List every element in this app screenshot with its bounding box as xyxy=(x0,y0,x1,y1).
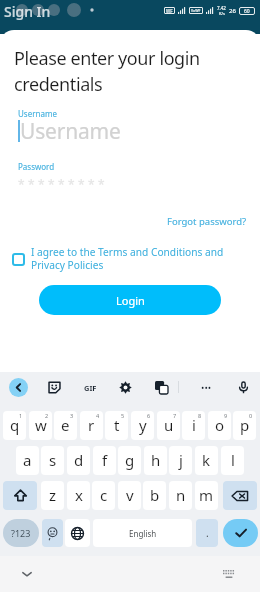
staticText: 8 xyxy=(198,412,202,419)
staticText: n xyxy=(176,485,186,505)
button[interactable]: y xyxy=(131,411,154,440)
button[interactable]: Translate xyxy=(153,379,169,395)
button[interactable]: Stickers xyxy=(46,379,62,395)
button[interactable]: n xyxy=(169,481,192,510)
button[interactable]: z xyxy=(41,481,64,510)
button[interactable]: q xyxy=(3,411,26,440)
button[interactable]: Switch keyboard xyxy=(218,563,240,585)
button[interactable]: r xyxy=(80,411,103,440)
button[interactable]: m xyxy=(195,481,218,510)
button[interactable]: s xyxy=(41,446,64,475)
staticText: * xyxy=(88,176,95,192)
staticText: Username xyxy=(20,117,121,146)
button[interactable]: Login xyxy=(39,285,221,315)
staticText: . xyxy=(206,526,209,540)
staticText: WF xyxy=(166,8,173,14)
staticText: w xyxy=(35,415,47,435)
staticText: ?123 xyxy=(11,527,31,539)
button[interactable]: Shift xyxy=(3,481,37,510)
staticText: * xyxy=(68,176,75,192)
button[interactable]: b xyxy=(143,481,166,510)
button[interactable]: Backspace xyxy=(223,481,257,510)
button[interactable]: f xyxy=(93,446,116,475)
staticText: Username xyxy=(18,108,57,119)
staticText: 6 xyxy=(147,412,151,419)
staticText: 1 xyxy=(19,412,23,419)
staticText: * xyxy=(48,176,55,192)
button[interactable]: d xyxy=(67,446,90,475)
staticText: Sign In xyxy=(4,2,51,21)
button[interactable]: g xyxy=(118,446,141,475)
button[interactable]: English xyxy=(93,519,192,547)
staticText: o xyxy=(215,415,225,435)
staticText: z xyxy=(49,485,57,505)
button[interactable]: Settings xyxy=(117,379,133,395)
staticText: 2 xyxy=(45,412,49,419)
button[interactable]: p xyxy=(233,411,256,440)
staticText: v xyxy=(126,485,134,505)
button[interactable]: j xyxy=(169,446,192,475)
button[interactable]: Forgot password? xyxy=(165,213,249,230)
staticText: m xyxy=(199,485,214,505)
staticText: f xyxy=(102,450,108,470)
button[interactable]: w xyxy=(29,411,52,440)
staticText: u xyxy=(164,415,174,435)
button[interactable]: t xyxy=(105,411,128,440)
staticText: K/s xyxy=(219,11,225,16)
button[interactable]: GIF xyxy=(80,380,100,396)
staticText: b xyxy=(150,485,160,505)
staticText: k xyxy=(202,450,211,470)
button[interactable]: k xyxy=(195,446,218,475)
staticText: p xyxy=(240,415,250,435)
staticText: r xyxy=(88,415,95,435)
button[interactable]: I agree to the Terms and Conditions and … xyxy=(11,245,224,272)
button[interactable]: Voice input xyxy=(235,379,251,395)
staticText: i xyxy=(192,415,196,435)
button[interactable]: Enter xyxy=(223,519,258,547)
staticText: * xyxy=(98,176,105,192)
button[interactable]: Emoji xyxy=(42,519,63,547)
staticText: 7 xyxy=(173,412,177,419)
staticText: t xyxy=(114,415,120,435)
staticText: h xyxy=(151,450,161,470)
button[interactable]: x xyxy=(67,481,90,510)
button[interactable]: Back xyxy=(9,378,28,397)
staticText: y xyxy=(139,415,147,435)
staticText: * xyxy=(38,176,45,192)
button[interactable]: o xyxy=(208,411,231,440)
staticText: 60 xyxy=(244,8,250,15)
button[interactable]: i xyxy=(182,411,205,440)
button[interactable]: Change language xyxy=(65,519,90,547)
button[interactable]: a xyxy=(16,446,39,475)
staticText: 9 xyxy=(224,412,228,419)
button[interactable]: u xyxy=(157,411,180,440)
staticText: l xyxy=(231,450,235,470)
staticText: 4 xyxy=(96,412,100,419)
staticText: * xyxy=(18,176,25,192)
staticText: VoWF xyxy=(191,8,201,13)
button[interactable]: l xyxy=(221,446,244,475)
staticText: 26 xyxy=(229,7,236,15)
button[interactable]: . xyxy=(196,519,218,547)
staticText: * xyxy=(28,176,35,192)
staticText: j xyxy=(179,450,183,470)
staticText: e xyxy=(61,415,70,435)
staticText: g xyxy=(125,450,135,470)
button[interactable]: More options xyxy=(198,379,214,395)
staticText: q xyxy=(10,415,20,435)
staticText: c xyxy=(100,485,108,505)
button[interactable]: c xyxy=(92,481,115,510)
staticText: * xyxy=(78,176,85,192)
button[interactable]: ?123 xyxy=(3,519,39,547)
staticText: I agree to the Terms and Conditions and … xyxy=(31,245,224,272)
staticText: 0 xyxy=(249,412,253,419)
staticText: d xyxy=(74,450,84,470)
staticText: Please enter your login credentials xyxy=(14,46,200,97)
button[interactable]: Hide keyboard xyxy=(16,563,38,585)
staticText: * xyxy=(58,176,65,192)
staticText: Login xyxy=(116,293,145,308)
button[interactable]: h xyxy=(144,446,167,475)
button[interactable]: v xyxy=(118,481,141,510)
staticText: a xyxy=(23,450,32,470)
button[interactable]: e xyxy=(54,411,77,440)
